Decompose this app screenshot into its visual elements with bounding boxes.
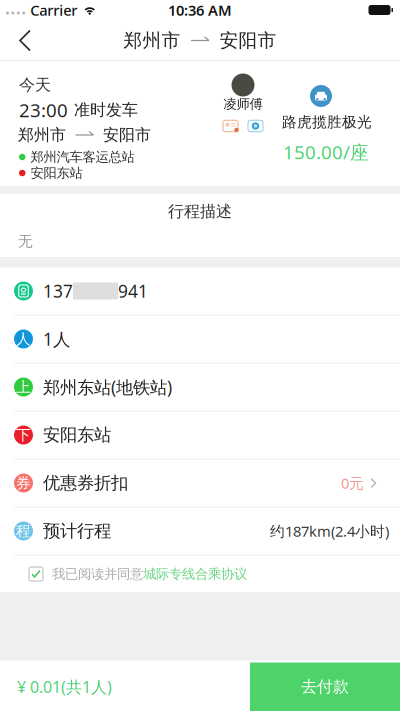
staticText: 我已阅读并同意 [52,566,143,582]
staticText: 预计行程 [43,520,111,542]
staticText: 无 [18,232,33,250]
staticText: 安阳市 [103,125,151,145]
staticText: 10:36 AM [168,0,232,20]
staticText: 券 [16,474,31,492]
staticText: ¥ 0.01(共1人) [17,676,112,697]
staticText: 下 [16,426,31,444]
staticText: 150.00/座 [283,140,369,164]
button[interactable]: 137 [0,267,400,314]
staticText: 人 [16,330,31,348]
staticText: 约187km(2.4小时) [270,521,389,541]
staticText: 941 [118,279,148,302]
button[interactable]: 上 [0,363,400,410]
staticText: 0元 [341,473,364,493]
staticText: 郑州市 [18,125,66,145]
button[interactable]: 下 [0,411,400,458]
staticText: 城际专线合乘协议 [143,566,247,582]
button[interactable]: 城际专线合乘协议 [143,566,247,582]
staticText: 去付款 [301,677,349,697]
staticText: 上 [16,378,31,396]
staticText: 23:00 [19,98,68,122]
staticText: 郑州东站(地铁站) [43,375,172,398]
staticText: Carrier [30,0,77,20]
staticText: 行程描述 [168,202,232,221]
staticText: 凌师傅 [223,96,262,112]
button[interactable]: 程 [0,507,400,554]
button[interactable]: 同意协议 [29,566,143,582]
staticText: 优惠券折扣 [43,472,128,494]
staticText: 1人 [43,327,70,350]
staticText: 郑州市 [123,29,180,52]
staticText: 安阳东站 [43,424,111,446]
staticText: 准时发车 [74,100,138,120]
button[interactable]: 券 [0,459,400,506]
staticText: 今天 [19,75,51,95]
staticText: 137 [43,279,73,302]
button[interactable]: 返回 [0,20,50,61]
button[interactable]: 去付款 [250,662,400,711]
staticText: 安阳市 [219,29,276,52]
staticText: 程 [16,522,31,540]
button[interactable]: 人 [0,315,400,362]
staticText: 路虎揽胜极光 [282,113,372,131]
staticText: 郑州汽车客运总站 [30,149,134,165]
staticText: 安阳东站 [30,165,82,181]
